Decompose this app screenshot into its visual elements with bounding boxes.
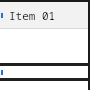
button[interactable]: Expand Item 01: [0, 2, 90, 28]
staticText: Item 01: [9, 8, 56, 23]
button[interactable]: Text field caret: [0, 66, 90, 78]
